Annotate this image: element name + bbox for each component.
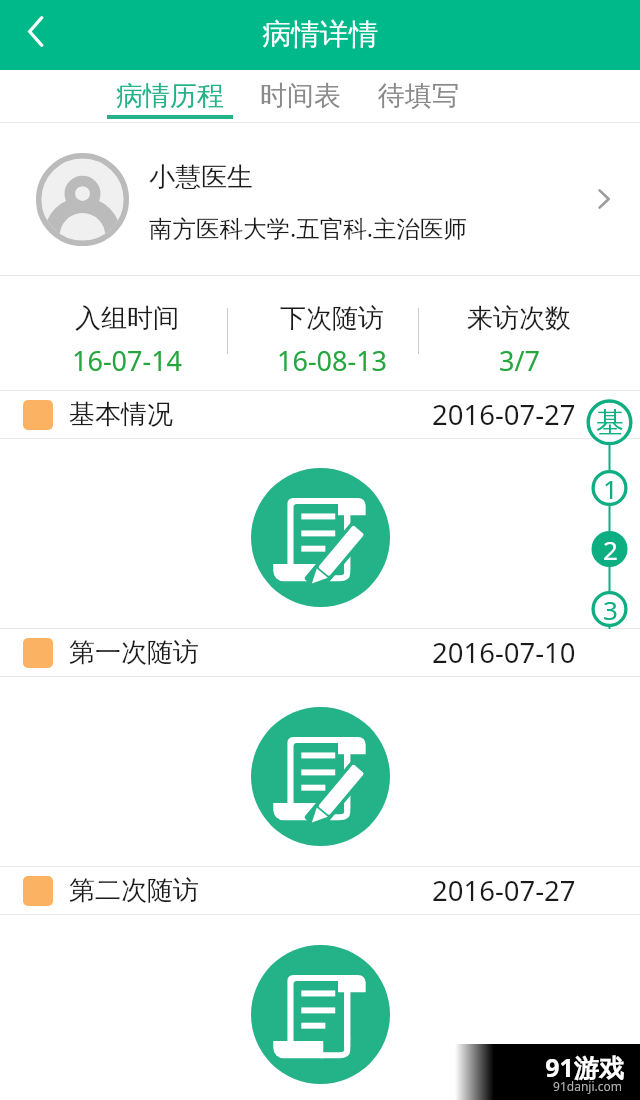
staticText: 入组时间 [75, 302, 179, 335]
staticText: 病情历程 [116, 79, 224, 113]
staticText: 病情详情 [262, 16, 378, 53]
staticText: 时间表 [260, 79, 341, 113]
button[interactable]: Back [8, 4, 62, 58]
button[interactable]: 下次随访 [232, 276, 432, 390]
button[interactable]: 第二次随访 [0, 867, 640, 914]
staticText: 3/7 [499, 342, 540, 379]
staticText: 91danji.com [553, 1078, 622, 1094]
staticText: 16-07-14 [72, 342, 183, 379]
staticText: 基本情况 [69, 398, 173, 431]
button[interactable]: 来访次数 [419, 276, 619, 390]
staticText: 2 [603, 532, 618, 567]
staticText: 南方医科大学.五官科.主治医师 [149, 212, 468, 244]
staticText: 待填写 [378, 79, 459, 113]
button[interactable]: 病情历程 [104, 70, 235, 122]
button[interactable]: 小慧医生 [0, 123, 640, 275]
staticText: 第一次随访 [69, 636, 199, 669]
staticText: 91游戏 [545, 1050, 624, 1084]
button[interactable]: 第一次随访 [0, 629, 640, 676]
staticText: 3 [603, 592, 618, 627]
staticText: 第二次随访 [69, 874, 199, 907]
button[interactable]: 待填写 [365, 70, 471, 122]
staticText: 16-08-13 [277, 342, 388, 379]
staticText: 基 [596, 405, 624, 440]
staticText: 2016-07-10 [432, 634, 576, 671]
staticText: 2016-07-27 [432, 396, 576, 433]
button[interactable]: 时间表 [247, 70, 353, 122]
staticText: 1 [603, 471, 618, 506]
staticText: 来访次数 [467, 302, 571, 335]
staticText: 小慧医生 [149, 161, 253, 194]
staticText: 下次随访 [280, 302, 384, 335]
button[interactable]: 入组时间 [27, 276, 227, 390]
staticText: 2016-07-27 [432, 872, 576, 909]
button[interactable]: 基本情况 [0, 391, 640, 438]
